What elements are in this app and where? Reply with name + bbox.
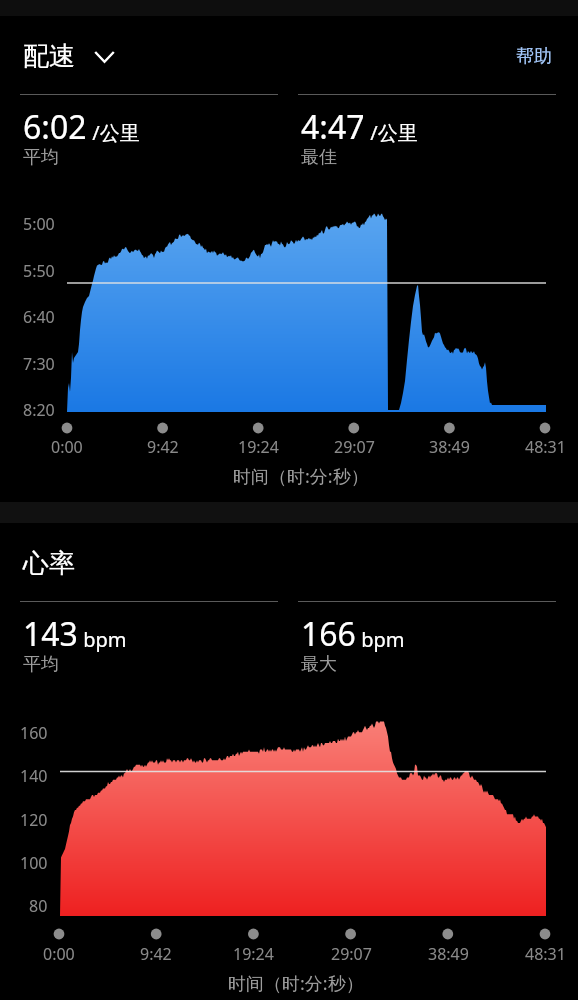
staticText: 38:49 — [428, 943, 469, 965]
staticText: 9:42 — [147, 436, 179, 458]
staticText: 140 — [20, 765, 48, 787]
staticText: bpm — [78, 626, 127, 653]
staticText: 48:31 — [525, 943, 566, 965]
staticText: 0:00 — [51, 436, 83, 458]
staticText: 7:30 — [23, 353, 55, 375]
staticText: bpm — [356, 626, 405, 653]
staticText: /公里 — [365, 119, 418, 146]
staticText: 时间（时:分:秒） — [233, 464, 369, 488]
button[interactable]: 143 — [20, 601, 278, 679]
staticText: 平均 — [23, 146, 59, 169]
staticText: 6:40 — [23, 306, 55, 328]
staticText: 29:07 — [334, 436, 375, 458]
button[interactable]: 帮助 — [516, 45, 552, 68]
staticText: 29:07 — [331, 943, 372, 965]
staticText: 最佳 — [301, 146, 337, 169]
staticText: 100 — [20, 852, 48, 874]
staticText: 帮助 — [516, 45, 552, 68]
staticText: 平均 — [23, 653, 59, 676]
staticText: 19:24 — [233, 943, 274, 965]
staticText: 80 — [29, 895, 48, 917]
staticText: 8:20 — [23, 399, 55, 421]
staticText: 143 — [23, 612, 78, 656]
staticText: 38:49 — [429, 436, 470, 458]
staticText: 最大 — [301, 653, 337, 676]
staticText: 19:24 — [238, 436, 279, 458]
staticText: 5:00 — [23, 213, 55, 235]
staticText: /公里 — [87, 119, 140, 146]
staticText: 5:50 — [23, 260, 55, 282]
staticText: 心率 — [23, 547, 75, 580]
staticText: 48:31 — [525, 436, 566, 458]
other: Change metric — [94, 50, 115, 64]
staticText: 9:42 — [140, 943, 172, 965]
staticText: 160 — [20, 722, 48, 744]
button[interactable]: 4:47 — [298, 94, 556, 172]
button[interactable]: 6:02 — [20, 94, 278, 172]
button[interactable]: 166 — [298, 601, 556, 679]
staticText: 6:02 — [23, 105, 87, 149]
staticText: 0:00 — [43, 943, 75, 965]
staticText: 配速 — [23, 40, 75, 73]
button[interactable]: 心率 — [23, 547, 75, 580]
staticText: 4:47 — [301, 105, 365, 149]
staticText: 时间（时:分:秒） — [228, 971, 364, 995]
staticText: 166 — [301, 612, 356, 656]
button[interactable]: 配速 — [23, 40, 115, 73]
staticText: 120 — [20, 809, 48, 831]
